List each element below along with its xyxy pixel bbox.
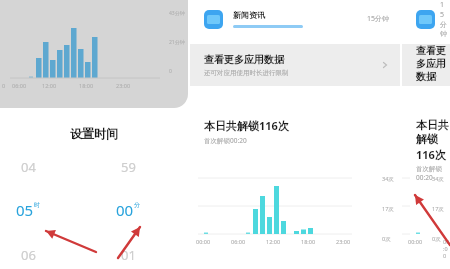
staticText: 首次解锁00:20 xyxy=(204,136,247,145)
staticText: 15分钟 xyxy=(367,14,390,24)
staticText: 00:00 xyxy=(196,238,211,245)
staticText: 新闻资讯 xyxy=(233,10,265,20)
staticText: 06:00 xyxy=(443,238,450,259)
button[interactable]: 新闻资讯 xyxy=(190,0,400,38)
staticText: 12:00 xyxy=(266,238,281,245)
staticText: 0 xyxy=(169,68,172,75)
other: 新闻资讯 xyxy=(204,10,223,29)
staticText: 0次 xyxy=(382,235,391,243)
staticText: 23:00 xyxy=(116,82,131,89)
staticText: 17次 xyxy=(382,205,394,213)
staticText: 34次 xyxy=(432,175,444,183)
button[interactable]: 查看更多应用数据 xyxy=(402,44,450,86)
staticText: 34次 xyxy=(382,175,394,183)
staticText: 43分钟 xyxy=(169,10,185,17)
staticText: 分 xyxy=(134,201,140,209)
staticText: 00 xyxy=(116,200,134,220)
staticText: 0 xyxy=(2,82,6,89)
staticText: 设置时间 xyxy=(70,126,118,141)
button[interactable]: 查看更多应用数据 xyxy=(190,44,400,86)
staticText: 查看更多应用数据 xyxy=(204,53,284,66)
staticText: 23:00 xyxy=(336,238,351,245)
staticText: 00:00 xyxy=(408,238,423,245)
other: 新闻资讯 xyxy=(416,10,435,29)
staticText: 本日共解锁116次 xyxy=(416,118,450,162)
staticText: 12:00 xyxy=(42,82,57,89)
staticText: 06:00 xyxy=(231,238,246,245)
staticText: 59 xyxy=(121,158,136,176)
staticText: 查看更多应用数据 xyxy=(416,44,450,83)
staticText: 还可对应用使用时长进行限制 xyxy=(204,69,289,77)
button[interactable]: 新闻资讯 xyxy=(402,0,450,38)
staticText: 首次解锁00:20 xyxy=(416,165,450,182)
staticText: 06 xyxy=(21,246,36,264)
staticText: 时 xyxy=(34,201,40,209)
staticText: 06:00 xyxy=(12,82,27,89)
staticText: 0次 xyxy=(432,235,441,243)
staticText: 05 xyxy=(16,200,34,220)
staticText: 21分钟 xyxy=(169,39,185,46)
staticText: 17次 xyxy=(432,205,444,213)
staticText: 18:00 xyxy=(79,82,94,89)
staticText: 04 xyxy=(21,158,36,176)
staticText: 18:00 xyxy=(301,238,316,245)
staticText: 本日共解锁116次 xyxy=(204,118,289,133)
staticText: 01 xyxy=(121,246,136,264)
